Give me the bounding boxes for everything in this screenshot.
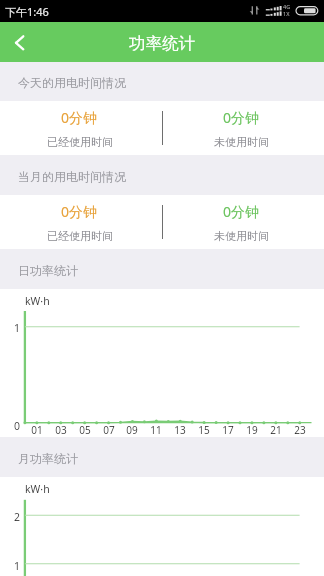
staticText: 月功率统计 [18, 451, 78, 466]
staticText: 15 [198, 423, 210, 437]
staticText: 05 [79, 423, 91, 437]
staticText: 下午1:46 [5, 4, 49, 19]
staticText: 01 [31, 423, 43, 437]
staticText: 09 [126, 423, 138, 437]
staticText: 0分钟 [61, 202, 98, 221]
button[interactable]: 0分钟 [162, 101, 324, 155]
staticText: 2 [14, 510, 21, 524]
staticText: 03 [55, 423, 67, 437]
button[interactable]: 0分钟 [0, 195, 162, 249]
staticText: 功率统计 [129, 33, 195, 54]
staticText: 0分钟 [223, 202, 260, 221]
staticText: 17 [222, 423, 234, 437]
staticText: 0分钟 [223, 108, 260, 127]
staticText: 今天的用电时间情况 [18, 75, 126, 90]
staticText: 未使用时间 [214, 135, 269, 149]
staticText: 07 [103, 423, 115, 437]
staticText: 未使用时间 [214, 229, 269, 243]
button[interactable]: Back [0, 22, 40, 62]
staticText: 0 [14, 419, 21, 433]
staticText: 1 [14, 559, 21, 573]
staticText: 日功率统计 [18, 263, 78, 278]
staticText: kW·h [25, 294, 50, 308]
staticText: 已经使用时间 [47, 135, 113, 149]
staticText: 21 [270, 423, 282, 437]
staticText: 1 [14, 321, 21, 335]
staticText: 0分钟 [61, 108, 98, 127]
staticText: 11 [150, 423, 162, 437]
staticText: 19 [246, 423, 258, 437]
staticText: 23 [294, 423, 306, 437]
staticText: 4G [283, 3, 291, 10]
staticText: 13 [174, 423, 186, 437]
button[interactable]: 0分钟 [0, 101, 162, 155]
button[interactable]: 0分钟 [162, 195, 324, 249]
staticText: 已经使用时间 [47, 229, 113, 243]
staticText: 1X [283, 10, 290, 17]
staticText: kW·h [25, 482, 50, 496]
staticText: 当月的用电时间情况 [18, 169, 126, 184]
